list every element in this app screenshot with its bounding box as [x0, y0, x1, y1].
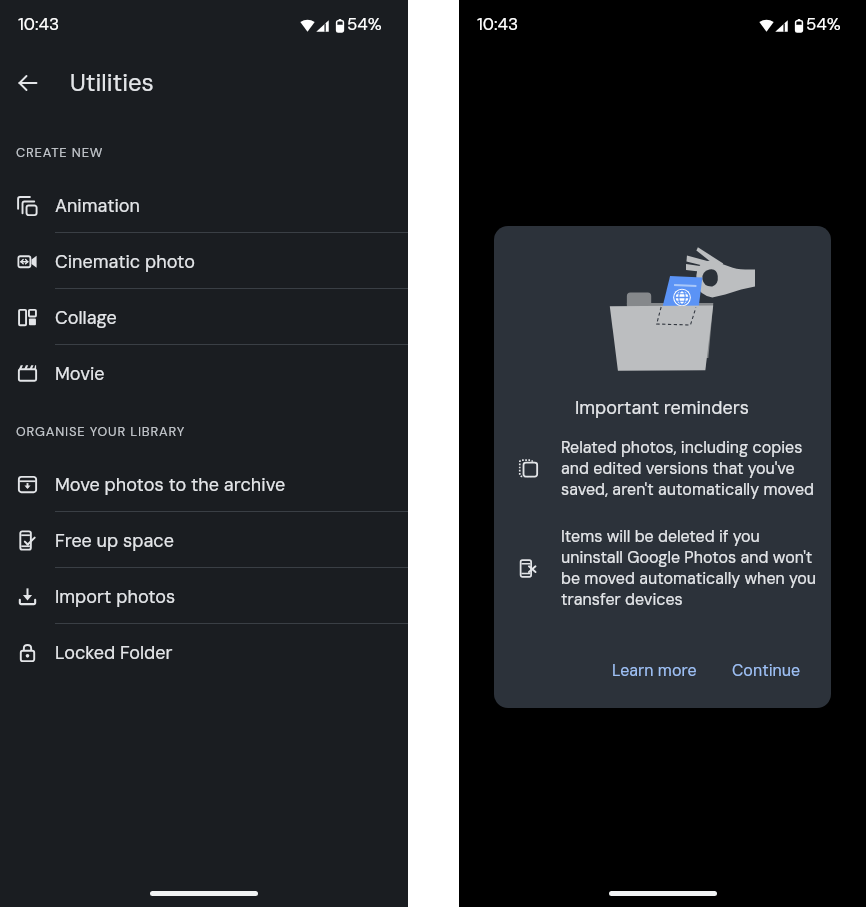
staticText: 10:43 [477, 13, 519, 35]
staticText: 54% [806, 13, 841, 35]
staticText: Learn more [612, 660, 697, 681]
button[interactable]: Collage [0, 289, 408, 345]
button[interactable]: Back [8, 63, 48, 103]
staticText: Import photos [55, 585, 176, 608]
staticText: ORGANISE YOUR LIBRARY [16, 423, 186, 440]
button[interactable]: Import photos [0, 568, 408, 624]
button[interactable]: Learn more [602, 651, 707, 690]
staticText: Utilities [70, 67, 154, 98]
staticText: Move photos to the archive [55, 473, 286, 496]
button[interactable]: Move photos to the archive [0, 456, 408, 512]
staticText: CREATE NEW [16, 144, 104, 161]
staticText: Items will be deleted if you uninstall G… [561, 526, 821, 610]
staticText: Free up space [55, 529, 174, 552]
staticText: Locked Folder [55, 641, 173, 664]
button[interactable]: Free up space [0, 512, 408, 568]
staticText: Movie [55, 362, 105, 385]
staticText: Related photos, including copies and edi… [561, 437, 821, 500]
button[interactable]: Continue [722, 651, 811, 690]
button[interactable]: Cinematic photo [0, 233, 408, 289]
staticText: Cinematic photo [55, 250, 195, 273]
button[interactable]: Movie [0, 345, 408, 401]
staticText: Important reminders [575, 396, 749, 419]
staticText: Collage [55, 306, 117, 329]
staticText: Continue [732, 660, 801, 681]
staticText: Animation [55, 194, 140, 217]
staticText: 54% [347, 13, 382, 35]
staticText: 10:43 [18, 13, 60, 35]
button[interactable]: Animation [0, 177, 408, 233]
button[interactable]: Locked Folder [0, 624, 408, 680]
